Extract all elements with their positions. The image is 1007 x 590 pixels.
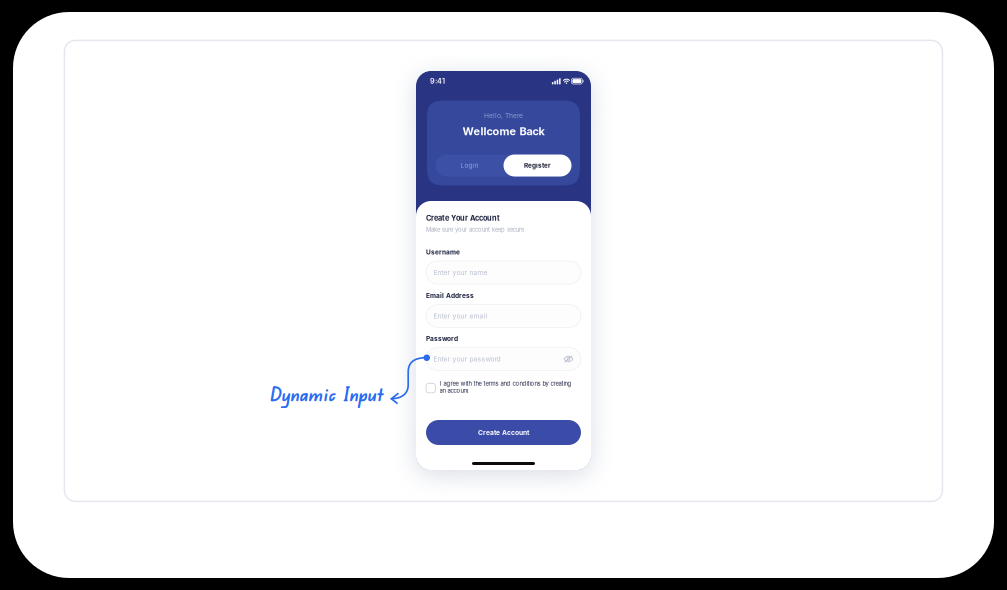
staticText: Username (426, 248, 460, 256)
staticText: Wellcome Back (462, 125, 544, 138)
button[interactable]: Create Account (426, 420, 581, 445)
staticText: Hello, There (484, 111, 523, 120)
button[interactable]: Login (435, 154, 503, 176)
staticText: Email Address (426, 291, 474, 299)
staticText: Password (426, 334, 458, 342)
staticText: Enter your name (434, 268, 488, 277)
staticText: Register (524, 162, 551, 169)
button[interactable]: Register (503, 154, 571, 176)
staticText: Make sure your account keep secure (426, 226, 524, 233)
staticText: Enter your email (434, 312, 488, 320)
staticText: 9:41 (430, 77, 445, 86)
staticText: Login (460, 162, 478, 169)
staticText: I agree with the terms and conditions by… (439, 380, 571, 394)
staticText: Create Account (478, 428, 529, 437)
staticText: Dynamic Input (270, 382, 384, 406)
staticText: Create Your Account (426, 214, 500, 222)
staticText: Enter your password (434, 355, 501, 363)
